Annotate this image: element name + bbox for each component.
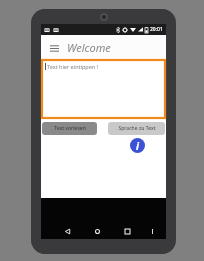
staticText: Welcome: [67, 40, 111, 55]
button[interactable]: Sprache zu Text: [108, 122, 165, 135]
staticText: Text vorlesen: [54, 125, 86, 132]
button[interactable]: Information: [130, 138, 145, 153]
button[interactable]: Text hier eintippen !: [42, 60, 165, 118]
button[interactable]: Back: [61, 225, 74, 238]
button[interactable]: Text vorlesen: [42, 122, 97, 135]
staticText: 20:01: [150, 26, 163, 33]
button[interactable]: Open navigation menu: [47, 41, 61, 55]
staticText: Sprache zu Text: [118, 125, 156, 132]
button[interactable]: More options: [147, 226, 157, 236]
button[interactable]: Home: [91, 225, 104, 238]
staticText: Text hier eintippen !: [47, 63, 99, 70]
staticText: i: [136, 139, 139, 153]
button[interactable]: Recent apps: [121, 225, 134, 238]
